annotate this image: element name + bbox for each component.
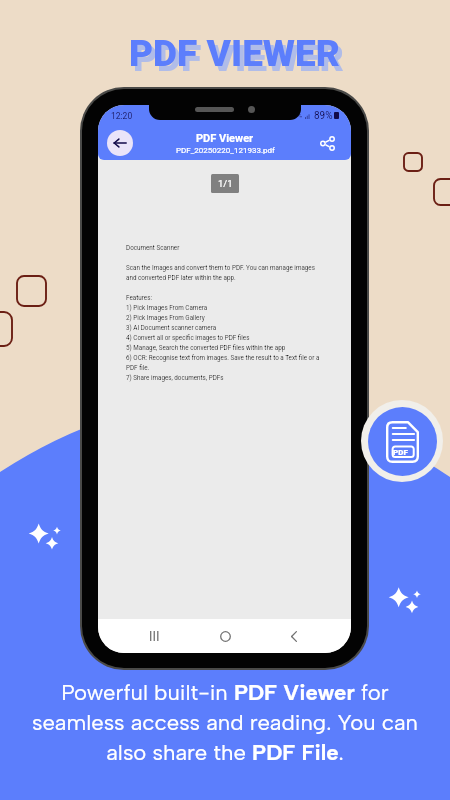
button[interactable]: Home [210, 621, 240, 651]
button[interactable]: Share [317, 133, 337, 153]
staticText: PDF Viewer [196, 132, 254, 145]
staticText: PDF VIEWER [129, 32, 340, 75]
staticText: PDF [393, 448, 408, 457]
staticText: 12:20 [111, 111, 133, 121]
staticText: 1/1 [218, 178, 233, 189]
staticText: Document Scanner Scan the Images and con… [126, 244, 320, 381]
staticText: 89% [314, 110, 333, 122]
button[interactable]: Recent apps [140, 621, 170, 651]
button[interactable]: Back [107, 130, 133, 156]
button[interactable]: Back [279, 621, 309, 651]
staticText: PDF_20250220_121933.pdf [176, 146, 275, 155]
staticText: PDF VIEWER [133, 37, 344, 80]
button[interactable]: PDF file [368, 407, 437, 476]
staticText: Powerful built-in PDF Viewer for seamles… [16, 679, 434, 765]
